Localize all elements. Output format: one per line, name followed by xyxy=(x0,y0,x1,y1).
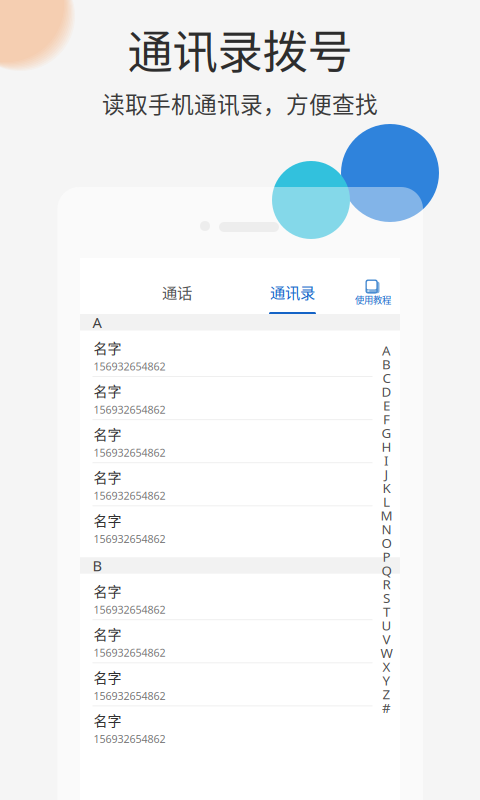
staticText: H xyxy=(381,438,391,455)
staticText: 156932654862 xyxy=(93,602,165,617)
button[interactable]: 名字 xyxy=(80,706,400,757)
staticText: U xyxy=(381,616,391,634)
button[interactable]: 名字 xyxy=(80,574,400,620)
staticText: F xyxy=(383,410,390,428)
button[interactable]: 通话 xyxy=(134,266,220,318)
staticText: I xyxy=(384,451,389,469)
staticText: R xyxy=(382,575,390,593)
staticText: S xyxy=(383,589,390,607)
staticText: C xyxy=(382,369,390,387)
staticText: G xyxy=(381,424,391,442)
staticText: K xyxy=(382,479,390,497)
staticText: L xyxy=(383,493,390,510)
staticText: 156932654862 xyxy=(93,732,165,746)
button[interactable]: Alphabet index xyxy=(374,343,398,715)
staticText: Q xyxy=(381,561,391,579)
staticText: B xyxy=(382,355,391,373)
staticText: 156932654862 xyxy=(93,689,165,703)
staticText: 156932654862 xyxy=(93,402,165,417)
staticText: Y xyxy=(382,671,390,689)
staticText: N xyxy=(381,520,391,538)
staticText: 名字 xyxy=(93,467,121,487)
staticText: 通话 xyxy=(162,281,192,303)
staticText: V xyxy=(382,630,390,648)
staticText: X xyxy=(382,658,390,675)
staticText: 名字 xyxy=(93,667,121,687)
staticText: A xyxy=(382,341,391,359)
staticText: 名字 xyxy=(93,380,121,401)
staticText: 名字 xyxy=(93,510,121,530)
staticText: 名字 xyxy=(93,580,121,601)
staticText: T xyxy=(383,603,390,620)
staticText: 名字 xyxy=(93,624,121,644)
button[interactable]: 名字 xyxy=(80,377,400,420)
staticText: 156932654862 xyxy=(93,532,165,546)
staticText: 通讯录 xyxy=(270,281,315,303)
staticText: A xyxy=(92,312,101,332)
staticText: O xyxy=(381,534,391,552)
button[interactable]: 通讯录 xyxy=(249,261,335,315)
button[interactable]: 名字 xyxy=(80,420,400,463)
button[interactable]: 名字 xyxy=(80,663,400,706)
staticText: D xyxy=(381,383,391,400)
staticText: E xyxy=(383,396,390,414)
staticText: Z xyxy=(382,685,390,703)
staticText: J xyxy=(384,465,388,483)
staticText: 156932654862 xyxy=(93,489,165,503)
staticText: 名字 xyxy=(93,337,121,358)
staticText: 使用教程 xyxy=(355,293,391,306)
button[interactable]: 名字 xyxy=(80,620,400,663)
staticText: W xyxy=(380,644,392,662)
button[interactable]: 使用教程 xyxy=(345,268,401,314)
staticText: P xyxy=(382,548,390,565)
button[interactable]: 名字 xyxy=(80,506,400,557)
staticText: 名字 xyxy=(93,710,121,730)
staticText: 156932654862 xyxy=(93,646,165,660)
staticText: 156932654862 xyxy=(93,359,165,373)
button[interactable]: 名字 xyxy=(80,463,400,506)
staticText: 读取手机通讯录，方便查找 xyxy=(102,87,378,119)
button[interactable]: 名字 xyxy=(80,330,400,377)
staticText: # xyxy=(382,699,391,717)
staticText: B xyxy=(92,556,102,575)
staticText: 名字 xyxy=(93,423,121,444)
staticText: 通讯录拨号 xyxy=(127,16,352,82)
staticText: M xyxy=(380,506,392,524)
staticText: 156932654862 xyxy=(93,445,165,460)
